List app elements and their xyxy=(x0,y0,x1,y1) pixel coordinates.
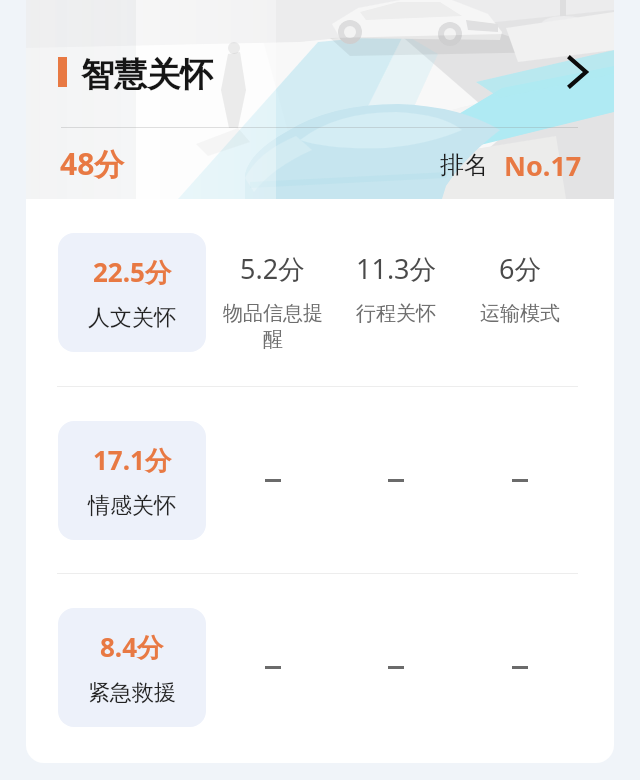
staticText: 22.5分 xyxy=(93,254,171,290)
staticText: 紧急救援 xyxy=(88,679,176,707)
staticText: 情感关怀 xyxy=(88,492,176,520)
staticText: 17.1分 xyxy=(93,442,171,478)
staticText: 人文关怀 xyxy=(88,304,176,332)
staticText: 5.2分 xyxy=(240,250,306,287)
staticText: 排名 xyxy=(440,150,488,180)
staticText: 运输模式 xyxy=(480,301,560,326)
staticText: 48分 xyxy=(60,143,125,184)
button[interactable]: 17.1分 xyxy=(26,387,614,573)
button[interactable]: 8.4分 xyxy=(26,574,614,760)
staticText: 11.3分 xyxy=(356,250,437,287)
staticText: 行程关怀 xyxy=(356,301,436,326)
staticText: 智慧关怀 xyxy=(81,54,213,96)
button[interactable]: 查看详情 xyxy=(546,36,608,98)
staticText: 物品信息提醒 xyxy=(218,301,328,352)
button[interactable]: 22.5分 xyxy=(26,199,614,386)
staticText: 8.4分 xyxy=(100,629,164,665)
staticText: 6分 xyxy=(499,250,542,287)
staticText: No.17 xyxy=(504,147,582,184)
button[interactable]: 智慧关怀 xyxy=(26,0,614,199)
